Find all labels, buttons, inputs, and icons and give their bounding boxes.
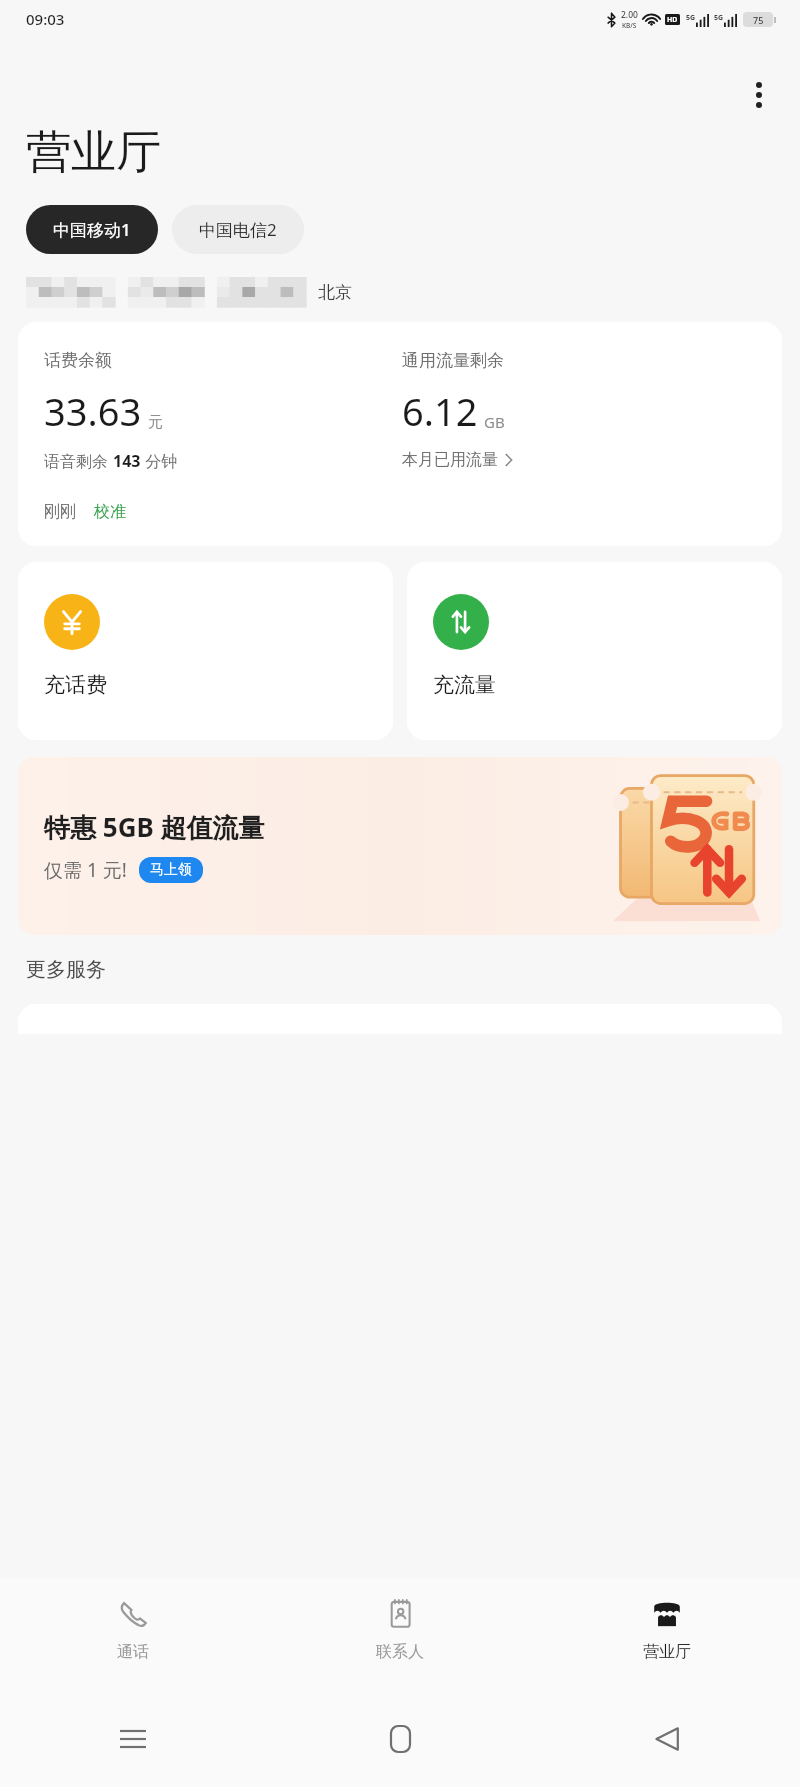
button[interactable]: 中国电信2 — [172, 205, 304, 254]
button[interactable]: 话费余额 — [18, 322, 782, 546]
staticText: 营业厅 — [643, 1642, 691, 1662]
staticText: 09:03 — [26, 9, 65, 29]
button[interactable]: 联系人 — [266, 1578, 533, 1690]
staticText: 话费余额 — [44, 350, 112, 371]
staticText: 联系人 — [376, 1642, 424, 1662]
staticText: 充话费 — [44, 672, 107, 698]
staticText: 通话 — [117, 1642, 149, 1662]
staticText: 仅需 1 元! — [44, 857, 127, 883]
staticText: KB/S — [622, 21, 637, 30]
staticText: 马上领 — [150, 861, 192, 879]
button[interactable]: 充流量 — [407, 562, 782, 740]
button[interactable]: Back — [637, 1709, 697, 1769]
staticText: 更多服务 — [26, 957, 106, 982]
button[interactable]: Home — [370, 1709, 430, 1769]
button[interactable]: 特惠 5GB 超值流量 — [18, 757, 782, 935]
staticText: 通用流量剩余 — [402, 350, 504, 371]
button[interactable]: 本月已用流量 — [402, 450, 512, 470]
staticText: 本月已用流量 — [402, 450, 498, 470]
staticText: 营业厅 — [26, 124, 161, 181]
staticText: 特惠 5GB 超值流量 — [44, 809, 265, 845]
staticText: 75 — [753, 14, 764, 26]
staticText: 校准 — [94, 502, 126, 522]
staticText: 分钟 — [141, 450, 178, 472]
staticText: 元 — [148, 413, 163, 432]
button[interactable]: 通话 — [0, 1578, 266, 1690]
staticText: 中国移动1 — [53, 218, 131, 241]
staticText: 33.63 — [44, 385, 142, 437]
staticText: 5G — [686, 13, 696, 23]
staticText: 6.12 — [402, 385, 478, 437]
button[interactable]: Recent apps — [103, 1709, 163, 1769]
staticText: 143 — [113, 450, 141, 472]
staticText: 刚刚 — [44, 502, 76, 522]
staticText: 5G — [714, 13, 724, 23]
button[interactable]: 校准 — [94, 502, 126, 522]
staticText: 北京 — [318, 282, 352, 303]
button[interactable]: 中国移动1 — [26, 205, 158, 254]
button[interactable]: More options — [736, 72, 782, 118]
staticText: 充流量 — [433, 672, 496, 698]
button[interactable]: 营业厅 — [533, 1578, 800, 1690]
button[interactable]: 充话费 — [18, 562, 393, 740]
staticText: GB — [484, 412, 505, 432]
button[interactable]: 马上领 — [139, 857, 203, 883]
staticText: 中国电信2 — [199, 218, 277, 241]
staticText: 语音剩余 — [44, 450, 113, 472]
staticText: 2.00 — [621, 9, 638, 21]
staticText: HD — [667, 15, 678, 25]
